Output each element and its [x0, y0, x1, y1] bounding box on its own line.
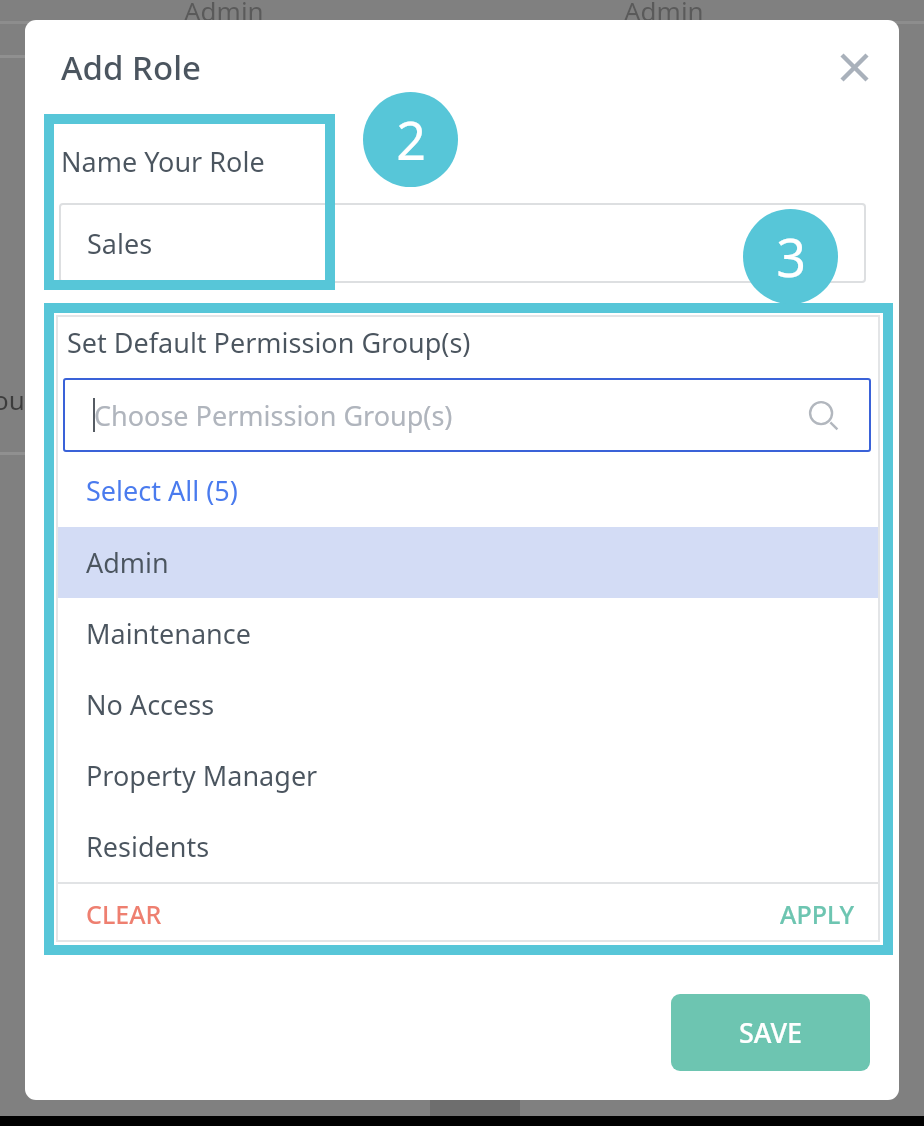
staticText: Set Default Permission Group(s)	[67, 324, 471, 361]
staticText: Property Manager	[86, 757, 318, 794]
staticText: Select All (5)	[86, 472, 238, 509]
staticText: Residents	[86, 828, 210, 865]
staticText: 3	[776, 221, 806, 292]
staticText: Sales	[87, 225, 153, 262]
staticText: CLEAR	[86, 897, 162, 931]
button[interactable]: Close dialog	[823, 36, 885, 98]
button[interactable]: Residents	[56, 811, 880, 882]
button[interactable]: No Access	[56, 669, 880, 740]
staticText: Add Role	[61, 45, 201, 90]
button[interactable]: Maintenance	[56, 598, 880, 669]
staticText: Admin	[86, 544, 169, 581]
button[interactable]: CLEAR	[64, 887, 204, 941]
staticText: Choose Permission Group(s)	[94, 397, 453, 434]
staticText: No Access	[86, 686, 215, 723]
button[interactable]: Sales	[59, 203, 866, 283]
staticText: 2	[396, 104, 426, 175]
staticText: SAVE	[739, 1014, 803, 1051]
button[interactable]: APPLY	[716, 887, 871, 941]
staticText: APPLY	[780, 897, 855, 931]
staticText: Maintenance	[86, 615, 251, 652]
button[interactable]: SAVE	[671, 994, 870, 1071]
staticText: ou	[0, 382, 25, 417]
staticText: Admin	[184, 0, 264, 28]
staticText: Admin	[624, 0, 704, 28]
button[interactable]: Admin	[56, 527, 880, 598]
button[interactable]: Choose Permission Group(s)	[63, 378, 871, 452]
button[interactable]: Select All (5)	[56, 455, 880, 526]
button[interactable]: Property Manager	[56, 740, 880, 811]
staticText: Name Your Role	[61, 143, 265, 180]
